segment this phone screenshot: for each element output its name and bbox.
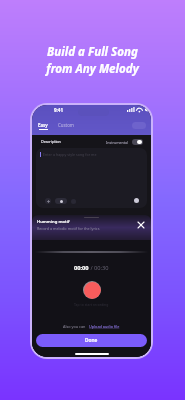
button[interactable]: Instrumental — [106, 139, 143, 145]
staticText: Humming motif — [37, 219, 70, 225]
staticText: Easy — [38, 122, 48, 128]
staticText: / 00:30 — [89, 264, 109, 272]
staticText: Tap to start recording — [74, 302, 109, 307]
button[interactable]: Enter a happy style song for me — [36, 148, 147, 208]
staticText: Build a Full Song — [47, 44, 138, 60]
staticText: Record a melodic motif for the lyrics — [37, 226, 100, 231]
button[interactable]: Upload audio file — [89, 324, 120, 329]
staticText: Done — [85, 337, 98, 344]
staticText: 9:41 — [54, 107, 63, 113]
button[interactable]: Microphone — [134, 198, 139, 203]
staticText: from Any Melody — [46, 61, 139, 77]
button[interactable]: Credits — [132, 122, 146, 129]
button[interactable]: Close — [136, 220, 145, 229]
button[interactable]: Done — [36, 334, 147, 347]
button[interactable]: Record — [83, 281, 101, 299]
staticText: Also you can — [63, 324, 86, 329]
staticText: Instrumental — [106, 140, 129, 145]
button[interactable]: Custom — [58, 122, 74, 128]
staticText: Enter a happy style song for me — [43, 152, 97, 157]
staticText: Description — [41, 139, 61, 144]
button[interactable]: More — [71, 199, 76, 204]
button[interactable]: Easy — [38, 122, 48, 130]
staticText: 00:00 — [74, 264, 89, 272]
button[interactable]: Add — [45, 198, 51, 204]
button[interactable] — [55, 198, 67, 204]
